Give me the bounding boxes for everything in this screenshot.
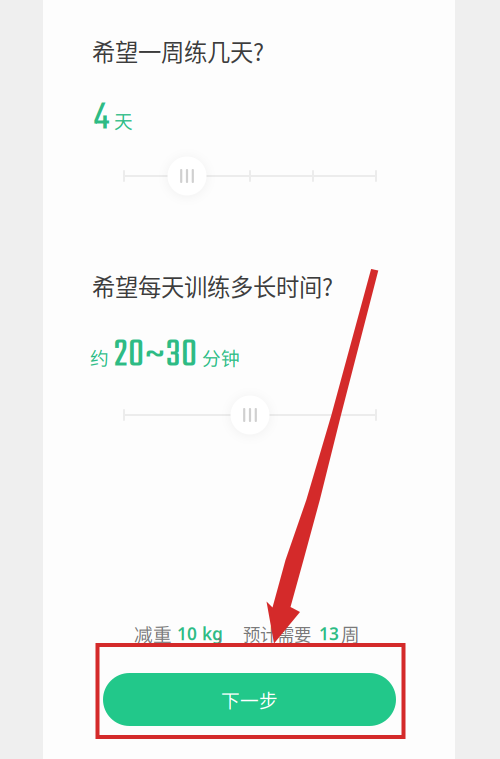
staticText: 预计需要 xyxy=(243,621,311,646)
staticText: 约 xyxy=(90,344,109,371)
staticText: 10 kg xyxy=(177,622,223,645)
staticText: 下一步 xyxy=(221,686,278,713)
staticText: 希望一周练几天? xyxy=(92,34,264,68)
staticText: 希望每天训练多长时间? xyxy=(92,269,333,303)
button[interactable]: 下一步 xyxy=(103,673,396,726)
staticText: ， xyxy=(215,620,234,647)
staticText: 13 xyxy=(319,622,339,645)
staticText: 4 xyxy=(94,89,109,148)
staticText: 周 xyxy=(341,620,360,647)
staticText: 20~30 xyxy=(114,326,197,385)
staticText: 天 xyxy=(114,107,133,134)
staticText: 分钟 xyxy=(202,344,240,371)
staticText: 减重 xyxy=(134,620,172,647)
